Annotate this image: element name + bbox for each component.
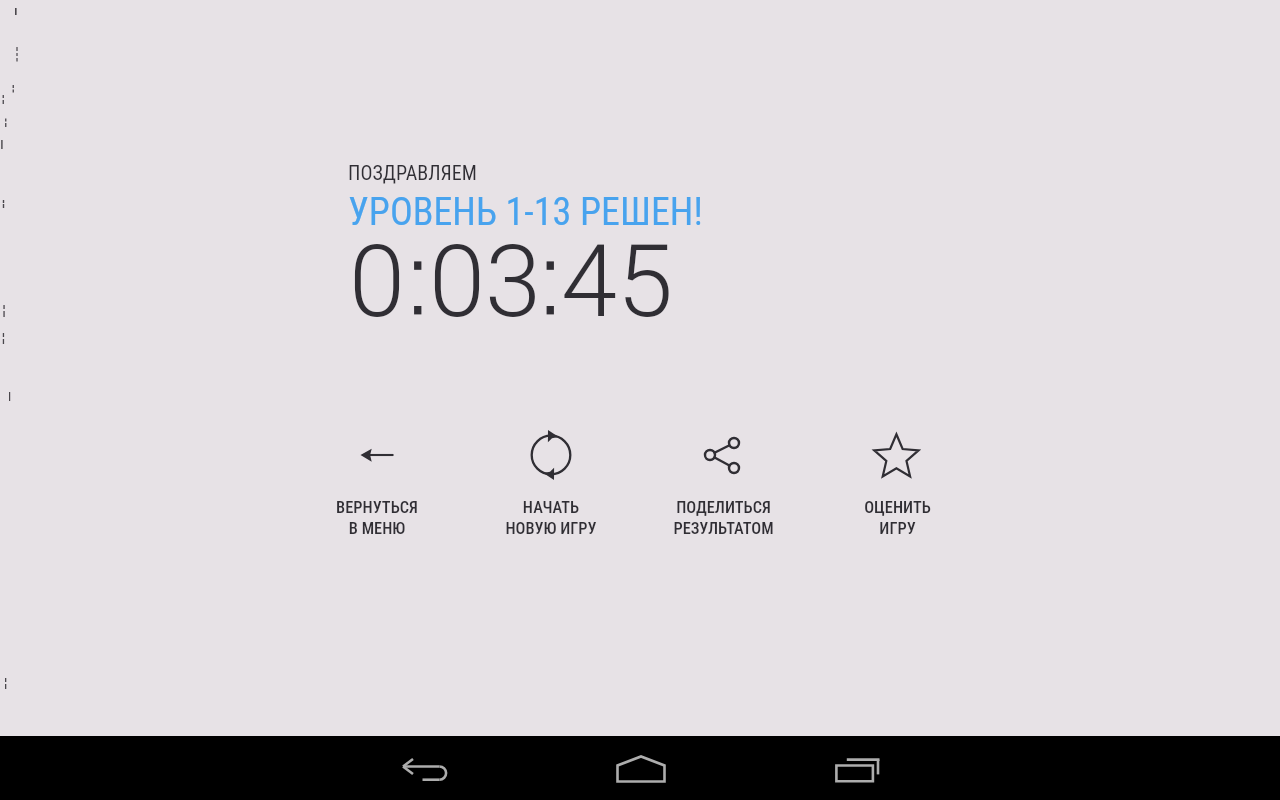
staticText: ПОЗДРАВЛЯЕМ [348, 161, 477, 184]
button[interactable]: Вернуться в меню [292, 423, 462, 538]
staticText: УРОВЕНЬ 1-13 РЕШЕН! [348, 190, 703, 235]
button[interactable]: Начать новую игру [466, 423, 636, 538]
button[interactable]: Home [568, 736, 713, 800]
staticText: ВЕРНУТЬСЯ В МЕНЮ [336, 498, 418, 538]
staticText: ПОДЕЛИТЬСЯ РЕЗУЛЬТАТОМ [673, 498, 774, 538]
staticText: ОЦЕНИТЬ ИГРУ [864, 498, 931, 538]
button[interactable]: Оценить игру [812, 423, 982, 538]
button[interactable]: Recents [785, 736, 930, 800]
other: Оценить игру [867, 425, 927, 485]
other: Home [613, 745, 669, 800]
staticText: 0 [349, 222, 406, 340]
other: Поделиться результатом [693, 425, 753, 485]
staticText: НАЧАТЬ НОВУЮ ИГРУ [505, 498, 597, 538]
staticText: 45 [561, 222, 674, 340]
other: Recents [830, 745, 886, 800]
other: Вернуться в меню [347, 425, 407, 485]
staticText: 03 [429, 222, 542, 340]
other: Back [396, 745, 452, 800]
other: Начать новую игру [521, 425, 581, 485]
button[interactable]: Back [351, 736, 496, 800]
button[interactable]: Поделиться результатом [638, 423, 808, 538]
